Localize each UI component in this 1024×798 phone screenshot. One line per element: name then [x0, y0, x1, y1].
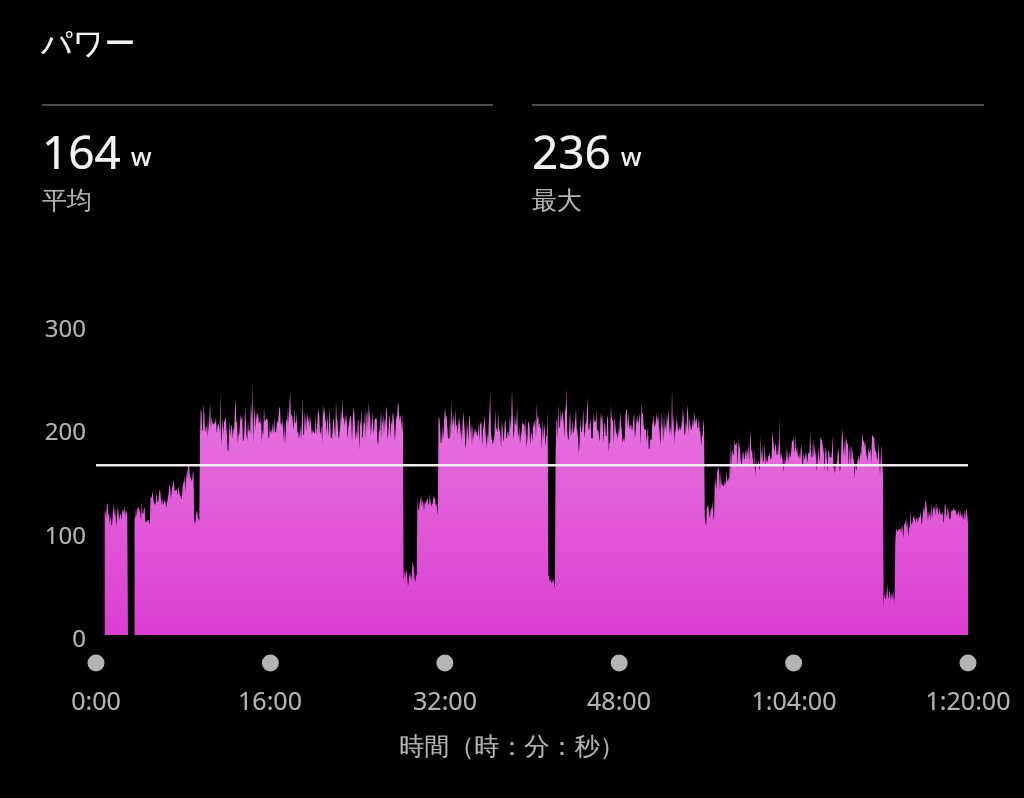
staticText: 最大	[532, 185, 582, 216]
staticText: 0	[40, 621, 86, 654]
staticText: 48:00	[539, 683, 699, 717]
staticText: 32:00	[365, 683, 525, 717]
staticText: 200	[40, 414, 86, 447]
staticText: 時間（時：分：秒）	[262, 731, 762, 762]
staticText: 300	[40, 311, 86, 344]
button[interactable]: 164	[42, 104, 493, 216]
button[interactable]: 236	[532, 104, 984, 216]
staticText: 100	[40, 518, 86, 551]
staticText: 164	[42, 120, 121, 183]
staticText: 1:20:00	[888, 683, 1024, 717]
staticText: パワー	[41, 24, 136, 63]
staticText: w	[131, 138, 152, 173]
staticText: 0:00	[16, 683, 176, 717]
staticText: w	[621, 138, 642, 173]
staticText: 236	[532, 120, 611, 183]
staticText: 1:04:00	[714, 683, 874, 717]
staticText: 16:00	[190, 683, 350, 717]
staticText: 平均	[42, 185, 92, 216]
other: Power over time chart	[0, 0, 1024, 798]
